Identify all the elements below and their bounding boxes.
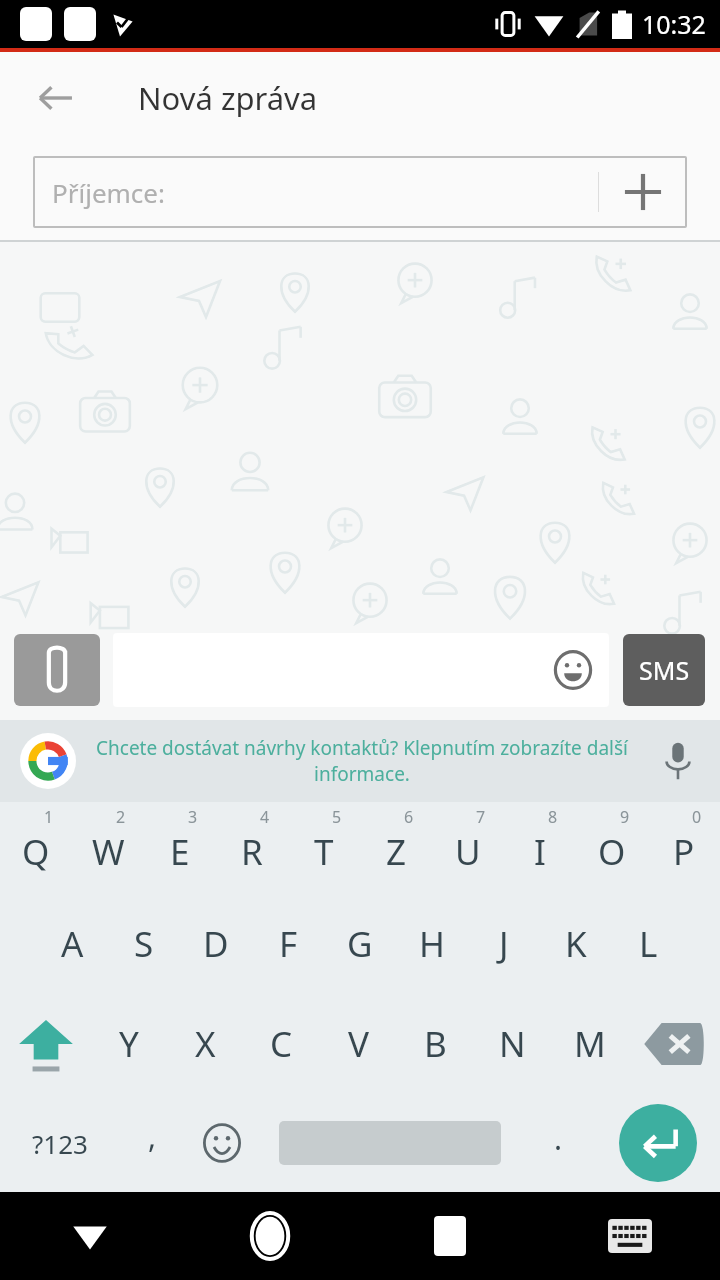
staticText: L <box>639 920 658 968</box>
staticText: 0 <box>692 806 702 828</box>
staticText: 10:32 <box>642 7 706 41</box>
button[interactable]: 0 <box>648 802 720 894</box>
button[interactable]: 3 <box>144 802 216 894</box>
button[interactable]: Attach <box>14 634 100 706</box>
button[interactable]: J <box>468 894 540 994</box>
staticText: C <box>270 1020 293 1068</box>
staticText: 2 <box>116 806 126 828</box>
staticText: G <box>347 920 373 968</box>
staticText: SMS <box>639 653 690 687</box>
button[interactable]: SMS <box>623 634 705 706</box>
staticText: 6 <box>404 806 414 828</box>
staticText: 4 <box>260 806 270 828</box>
staticText: K <box>565 920 587 968</box>
button[interactable]: Hide keyboard <box>0 1192 180 1280</box>
button[interactable]: Shift <box>0 994 91 1094</box>
button[interactable]: Emoji <box>113 633 609 707</box>
button[interactable]: 7 <box>432 802 504 894</box>
staticText: J <box>499 920 509 968</box>
staticText: A <box>61 920 84 968</box>
staticText: Z <box>386 828 407 876</box>
staticText: H <box>419 920 445 968</box>
button[interactable]: S <box>108 894 180 994</box>
staticText: V <box>348 1020 370 1068</box>
button[interactable]: X <box>167 994 243 1094</box>
button[interactable]: A <box>36 894 108 994</box>
button[interactable]: 8 <box>504 802 576 894</box>
button[interactable]: B <box>397 994 474 1094</box>
button[interactable]: 1 <box>0 802 72 894</box>
staticText: D <box>203 920 229 968</box>
staticText: B <box>424 1020 447 1068</box>
button[interactable]: K <box>540 894 612 994</box>
button[interactable]: H <box>396 894 468 994</box>
button[interactable]: Switch keyboard <box>540 1192 720 1280</box>
staticText: R <box>241 828 263 876</box>
button[interactable]: C <box>243 994 320 1094</box>
button[interactable]: . <box>522 1094 595 1192</box>
staticText: Y <box>119 1020 139 1068</box>
staticText: T <box>314 828 334 876</box>
staticText: 1 <box>44 806 54 828</box>
staticText: E <box>170 828 190 876</box>
staticText: M <box>574 1020 606 1068</box>
button[interactable]: Enter <box>595 1094 720 1192</box>
button[interactable]: Chcete dostávat návrhy kontaktů? Klepnut… <box>0 720 720 802</box>
button[interactable]: 2 <box>72 802 144 894</box>
staticText: 9 <box>620 806 630 828</box>
button[interactable]: Home <box>180 1192 360 1280</box>
button[interactable]: , <box>119 1094 185 1192</box>
button[interactable]: F <box>252 894 324 994</box>
button[interactable]: Emoji <box>541 638 605 702</box>
staticText: Nová zpráva <box>138 77 318 119</box>
button[interactable]: Back <box>24 66 88 130</box>
staticText: W <box>92 828 125 876</box>
button[interactable]: 5 <box>288 802 360 894</box>
button[interactable]: Voice input <box>648 731 708 791</box>
staticText: O <box>598 828 626 876</box>
button[interactable]: Backspace <box>628 994 720 1094</box>
button[interactable] <box>258 1094 522 1192</box>
button[interactable]: D <box>180 894 252 994</box>
button[interactable]: 9 <box>576 802 648 894</box>
button[interactable]: Y <box>91 994 167 1094</box>
button[interactable]: 4 <box>216 802 288 894</box>
staticText: P <box>673 828 695 876</box>
staticText: I <box>534 828 546 876</box>
button[interactable]: Add recipient <box>599 156 687 228</box>
staticText: S <box>134 920 154 968</box>
button[interactable]: Příjemce: <box>33 156 687 228</box>
staticText: X <box>195 1020 216 1068</box>
button[interactable]: 6 <box>360 802 432 894</box>
staticText: Chcete dostávat návrhy kontaktů? Klepnut… <box>92 735 632 787</box>
button[interactable]: G <box>324 894 396 994</box>
staticText: , <box>148 1116 157 1157</box>
staticText: N <box>499 1020 526 1068</box>
staticText: . <box>554 1118 563 1159</box>
button[interactable]: ?123 <box>0 1094 119 1192</box>
staticText: 7 <box>476 806 486 828</box>
staticText: 5 <box>332 806 342 828</box>
staticText: 3 <box>188 806 198 828</box>
staticText: Příjemce: <box>52 175 598 210</box>
button[interactable]: V <box>320 994 397 1094</box>
staticText: 8 <box>548 806 558 828</box>
button[interactable]: L <box>612 894 684 994</box>
button[interactable]: N <box>474 994 551 1094</box>
button[interactable]: Emoji keyboard <box>185 1094 258 1192</box>
staticText: U <box>455 828 481 876</box>
staticText: ?123 <box>32 1126 88 1161</box>
staticText: Q <box>22 828 50 876</box>
staticText: F <box>279 920 298 968</box>
button[interactable]: Recents <box>360 1192 540 1280</box>
button[interactable]: M <box>551 994 628 1094</box>
